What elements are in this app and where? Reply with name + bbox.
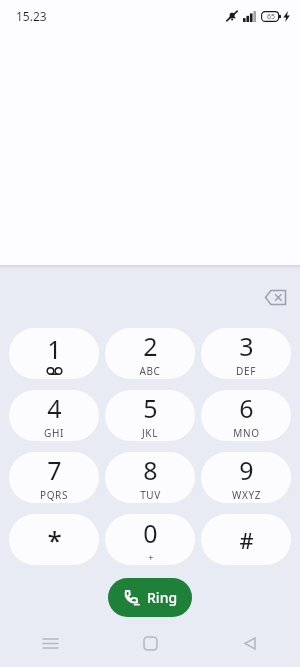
button[interactable]: Back bbox=[200, 620, 300, 667]
staticText: 3 bbox=[239, 329, 254, 363]
button[interactable]: 1 bbox=[9, 328, 99, 379]
button[interactable]: Backspace bbox=[258, 280, 292, 314]
button[interactable]: Recent apps bbox=[0, 620, 100, 667]
button[interactable]: Ring bbox=[108, 578, 192, 617]
button[interactable]: 9 bbox=[201, 452, 291, 503]
button[interactable]: 0 bbox=[105, 514, 195, 565]
button[interactable]: 3 bbox=[201, 328, 291, 379]
staticText: DEF bbox=[236, 364, 256, 378]
button[interactable]: 7 bbox=[9, 452, 99, 503]
button[interactable]: 2 bbox=[105, 328, 195, 379]
staticText: ABC bbox=[139, 364, 161, 378]
staticText: WXYZ bbox=[232, 488, 261, 502]
staticText: 5 bbox=[143, 391, 158, 425]
staticText: GHI bbox=[44, 426, 64, 440]
staticText: 7 bbox=[47, 453, 62, 487]
staticText: 6 bbox=[239, 391, 254, 425]
button[interactable]: 6 bbox=[201, 390, 291, 441]
staticText: 9 bbox=[239, 453, 254, 487]
button[interactable]: 5 bbox=[105, 390, 195, 441]
staticText: TUV bbox=[140, 488, 161, 502]
staticText: 15.23 bbox=[16, 8, 47, 24]
staticText: 2 bbox=[143, 329, 158, 363]
staticText: * bbox=[47, 522, 62, 557]
button[interactable]: 4 bbox=[9, 390, 99, 441]
button[interactable]: 8 bbox=[105, 452, 195, 503]
staticText: 8 bbox=[143, 453, 158, 487]
button[interactable]: * bbox=[9, 514, 99, 565]
staticText: MNO bbox=[233, 426, 260, 440]
staticText: JKL bbox=[142, 426, 158, 440]
staticText: 65 bbox=[267, 12, 276, 22]
button[interactable]: # bbox=[201, 514, 291, 565]
staticText: + bbox=[148, 551, 154, 563]
staticText: # bbox=[239, 525, 254, 555]
button[interactable]: Home bbox=[100, 620, 200, 667]
staticText: PQRS bbox=[40, 488, 68, 502]
staticText: 0 bbox=[143, 516, 158, 550]
staticText: 4 bbox=[47, 391, 62, 425]
staticText: 1 bbox=[47, 332, 62, 366]
staticText: Ring bbox=[147, 588, 178, 607]
